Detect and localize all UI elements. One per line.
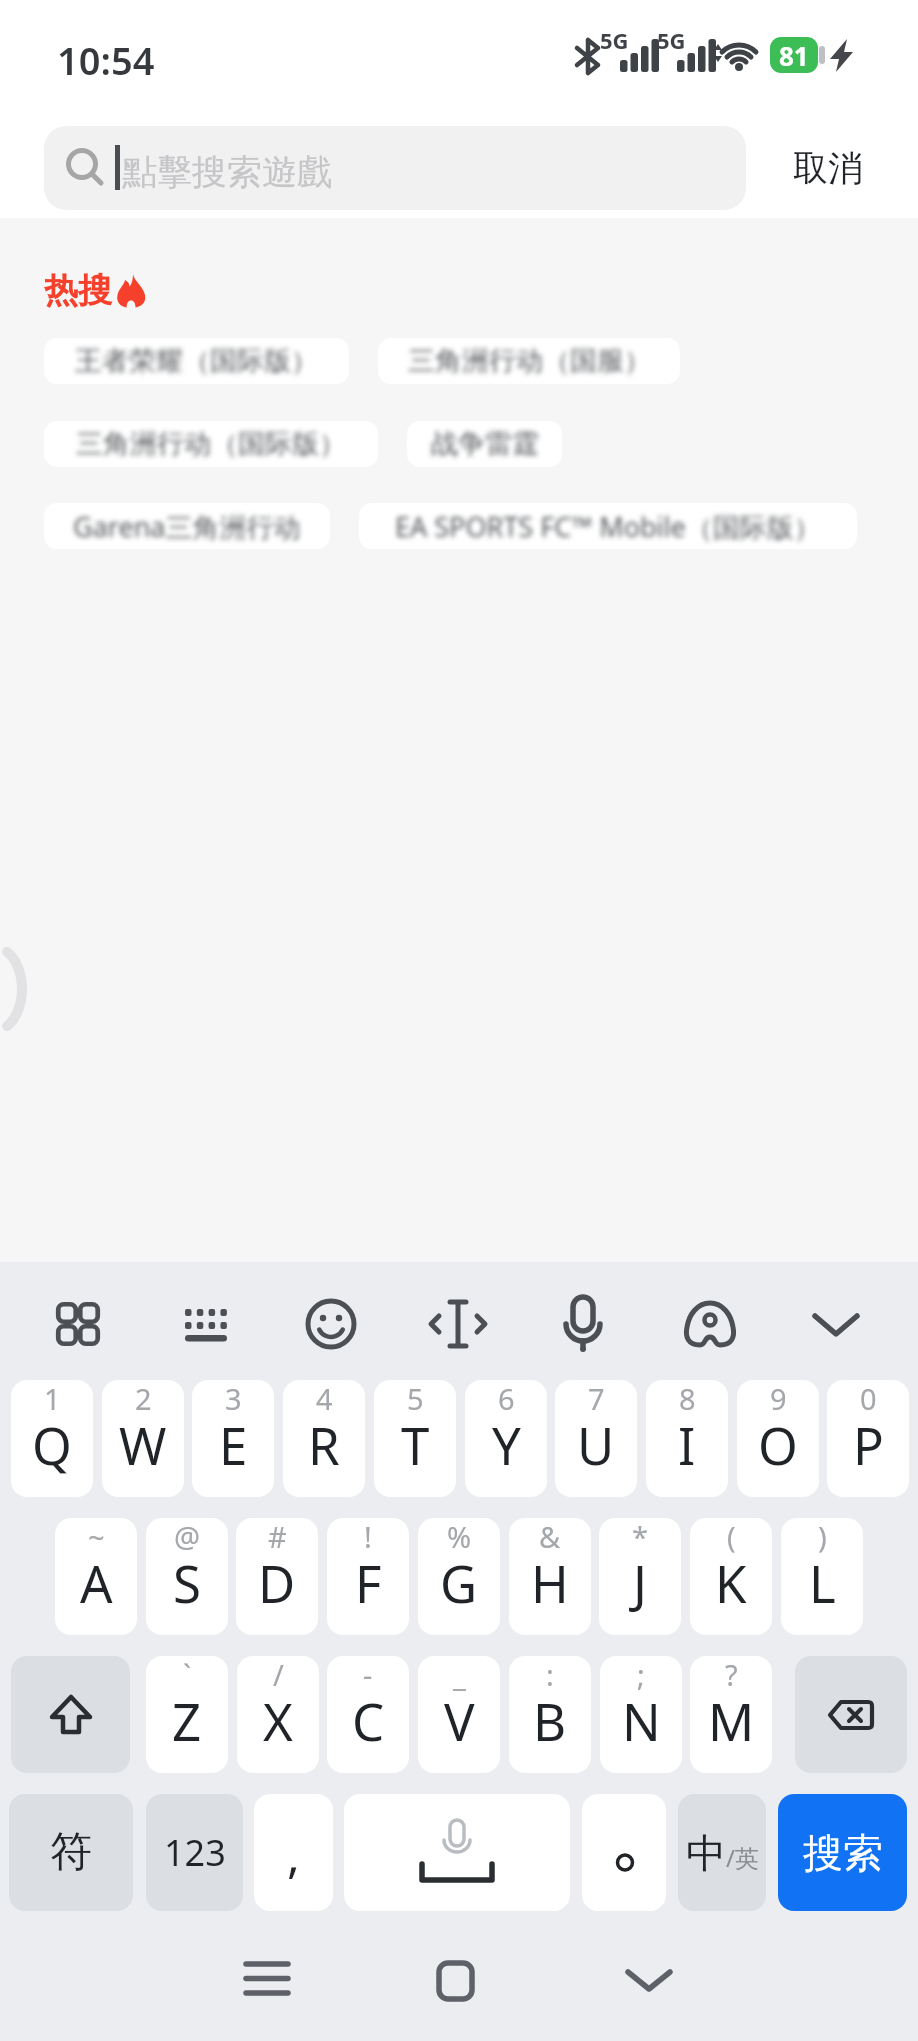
- staticText: 8: [679, 1380, 696, 1418]
- staticText: V: [444, 1686, 475, 1755]
- staticText: ,: [287, 1822, 300, 1887]
- staticText: F: [355, 1548, 382, 1617]
- staticText: L: [809, 1548, 836, 1617]
- button[interactable]: 2: [102, 1380, 184, 1497]
- staticText: EA SPORTS FC™ Mobile（国际版）: [395, 508, 821, 545]
- button[interactable]: EA SPORTS FC™ Mobile（国际版）: [359, 503, 857, 549]
- staticText: R: [308, 1410, 340, 1479]
- button[interactable]: ~: [55, 1518, 137, 1635]
- button[interactable]: [795, 1656, 907, 1773]
- staticText: Q: [32, 1410, 72, 1479]
- button[interactable]: [43, 1289, 113, 1359]
- button[interactable]: 取消: [789, 142, 867, 194]
- button[interactable]: 123: [146, 1794, 243, 1911]
- button[interactable]: 5: [374, 1380, 456, 1497]
- button[interactable]: *: [599, 1518, 681, 1635]
- staticText: 符: [50, 1826, 92, 1879]
- button[interactable]: 點擊搜索遊戲: [44, 126, 746, 210]
- button[interactable]: 三角洲行动（国服）: [378, 338, 680, 384]
- button[interactable]: [619, 1948, 679, 2008]
- button[interactable]: 3: [192, 1380, 274, 1497]
- staticText: 王者荣耀（国际版）: [75, 344, 318, 378]
- button[interactable]: !: [327, 1518, 409, 1635]
- button[interactable]: `: [146, 1656, 228, 1773]
- button[interactable]: Garena三角洲行动: [44, 503, 330, 549]
- button[interactable]: 9: [737, 1380, 819, 1497]
- staticText: A: [80, 1548, 113, 1617]
- button[interactable]: [296, 1289, 366, 1359]
- staticText: 3: [225, 1380, 242, 1418]
- staticText: #: [268, 1518, 287, 1556]
- staticText: Z: [172, 1686, 202, 1755]
- staticText: G: [440, 1548, 478, 1617]
- staticText: ~: [88, 1518, 105, 1556]
- button[interactable]: 搜索: [778, 1794, 907, 1911]
- button[interactable]: -: [327, 1656, 409, 1773]
- staticText: 2: [135, 1380, 152, 1418]
- button[interactable]: 4: [283, 1380, 365, 1497]
- button[interactable]: [11, 1656, 130, 1773]
- button[interactable]: [582, 1794, 666, 1911]
- staticText: 取消: [793, 146, 863, 190]
- staticText: I: [678, 1410, 696, 1479]
- button[interactable]: /: [237, 1656, 319, 1773]
- button[interactable]: [675, 1289, 745, 1359]
- button[interactable]: #: [236, 1518, 318, 1635]
- staticText: 10:54: [57, 34, 155, 78]
- staticText: _: [453, 1656, 466, 1694]
- staticText: 81: [779, 38, 809, 73]
- button[interactable]: [237, 1948, 297, 2008]
- staticText: 战争雷霆: [431, 427, 539, 461]
- staticText: ?: [725, 1656, 738, 1694]
- staticText: Y: [492, 1410, 521, 1479]
- button[interactable]: 符: [9, 1794, 133, 1911]
- button[interactable]: [548, 1289, 618, 1359]
- staticText: C: [352, 1686, 385, 1755]
- button[interactable]: [344, 1794, 570, 1911]
- button[interactable]: ;: [600, 1656, 682, 1773]
- button[interactable]: 1: [11, 1380, 93, 1497]
- button[interactable]: 中: [678, 1794, 766, 1911]
- staticText: /英: [726, 1841, 759, 1874]
- button[interactable]: 6: [465, 1380, 547, 1497]
- staticText: S: [173, 1548, 201, 1617]
- staticText: !: [364, 1518, 372, 1556]
- button[interactable]: [425, 1950, 485, 2010]
- button[interactable]: 王者荣耀（国际版）: [44, 338, 349, 384]
- button[interactable]: &: [509, 1518, 591, 1635]
- button[interactable]: 0: [827, 1380, 909, 1497]
- staticText: 點擊搜索遊戲: [122, 150, 332, 194]
- staticText: X: [263, 1686, 293, 1755]
- staticText: 5G: [657, 25, 686, 53]
- button[interactable]: %: [418, 1518, 500, 1635]
- staticText: :: [546, 1656, 554, 1694]
- staticText: 9: [770, 1380, 787, 1418]
- staticText: ;: [637, 1656, 645, 1694]
- button[interactable]: (: [690, 1518, 772, 1635]
- button[interactable]: ,: [254, 1794, 333, 1911]
- button[interactable]: [423, 1289, 493, 1359]
- staticText: J: [633, 1548, 647, 1617]
- staticText: 4: [316, 1380, 333, 1418]
- staticText: &: [539, 1518, 561, 1556]
- staticText: 中: [686, 1828, 726, 1878]
- staticText: 6: [498, 1380, 515, 1418]
- button[interactable]: [171, 1289, 241, 1359]
- button[interactable]: 三角洲行动（国际版）: [44, 421, 378, 467]
- staticText: 1: [44, 1380, 61, 1418]
- staticText: D: [258, 1548, 296, 1617]
- button[interactable]: ?: [690, 1656, 772, 1773]
- staticText: T: [401, 1410, 430, 1479]
- staticText: (: [727, 1518, 736, 1556]
- staticText: 热搜: [44, 269, 112, 312]
- button[interactable]: _: [418, 1656, 500, 1773]
- button[interactable]: 战争雷霆: [407, 421, 562, 467]
- button[interactable]: @: [146, 1518, 228, 1635]
- button[interactable]: 8: [646, 1380, 728, 1497]
- button[interactable]: [801, 1289, 871, 1359]
- button[interactable]: ): [781, 1518, 863, 1635]
- staticText: E: [219, 1410, 248, 1479]
- button[interactable]: 7: [555, 1380, 637, 1497]
- staticText: `: [183, 1656, 192, 1694]
- button[interactable]: :: [509, 1656, 591, 1773]
